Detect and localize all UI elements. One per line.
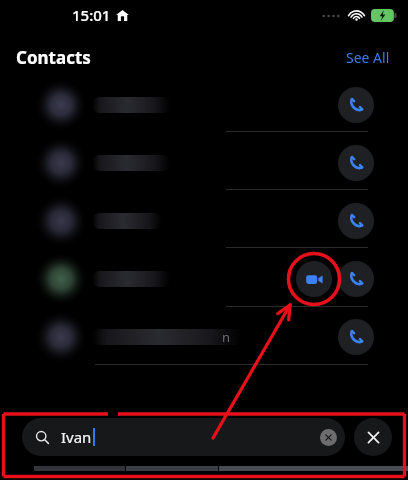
button[interactable] [0,192,408,250]
staticText: 15:01 [72,5,111,25]
staticText: Contacts [16,46,91,69]
button[interactable] [0,76,408,134]
staticText: n [222,328,231,346]
button[interactable]: Ivan [22,418,345,456]
button[interactable]: Clear text [320,429,337,446]
button[interactable] [0,250,408,308]
button[interactable]: Call [338,203,374,239]
button[interactable]: See All [342,44,394,71]
staticText: See All [346,48,390,67]
button[interactable]: Call [338,87,374,123]
button[interactable] [0,308,408,366]
button[interactable]: Call [338,145,374,181]
button[interactable]: Video call [296,261,332,297]
staticText: Ivan [61,427,92,447]
button[interactable] [0,134,408,192]
button[interactable]: Close search [354,418,392,456]
button[interactable]: Call [338,261,374,297]
button[interactable]: Call [338,319,374,355]
